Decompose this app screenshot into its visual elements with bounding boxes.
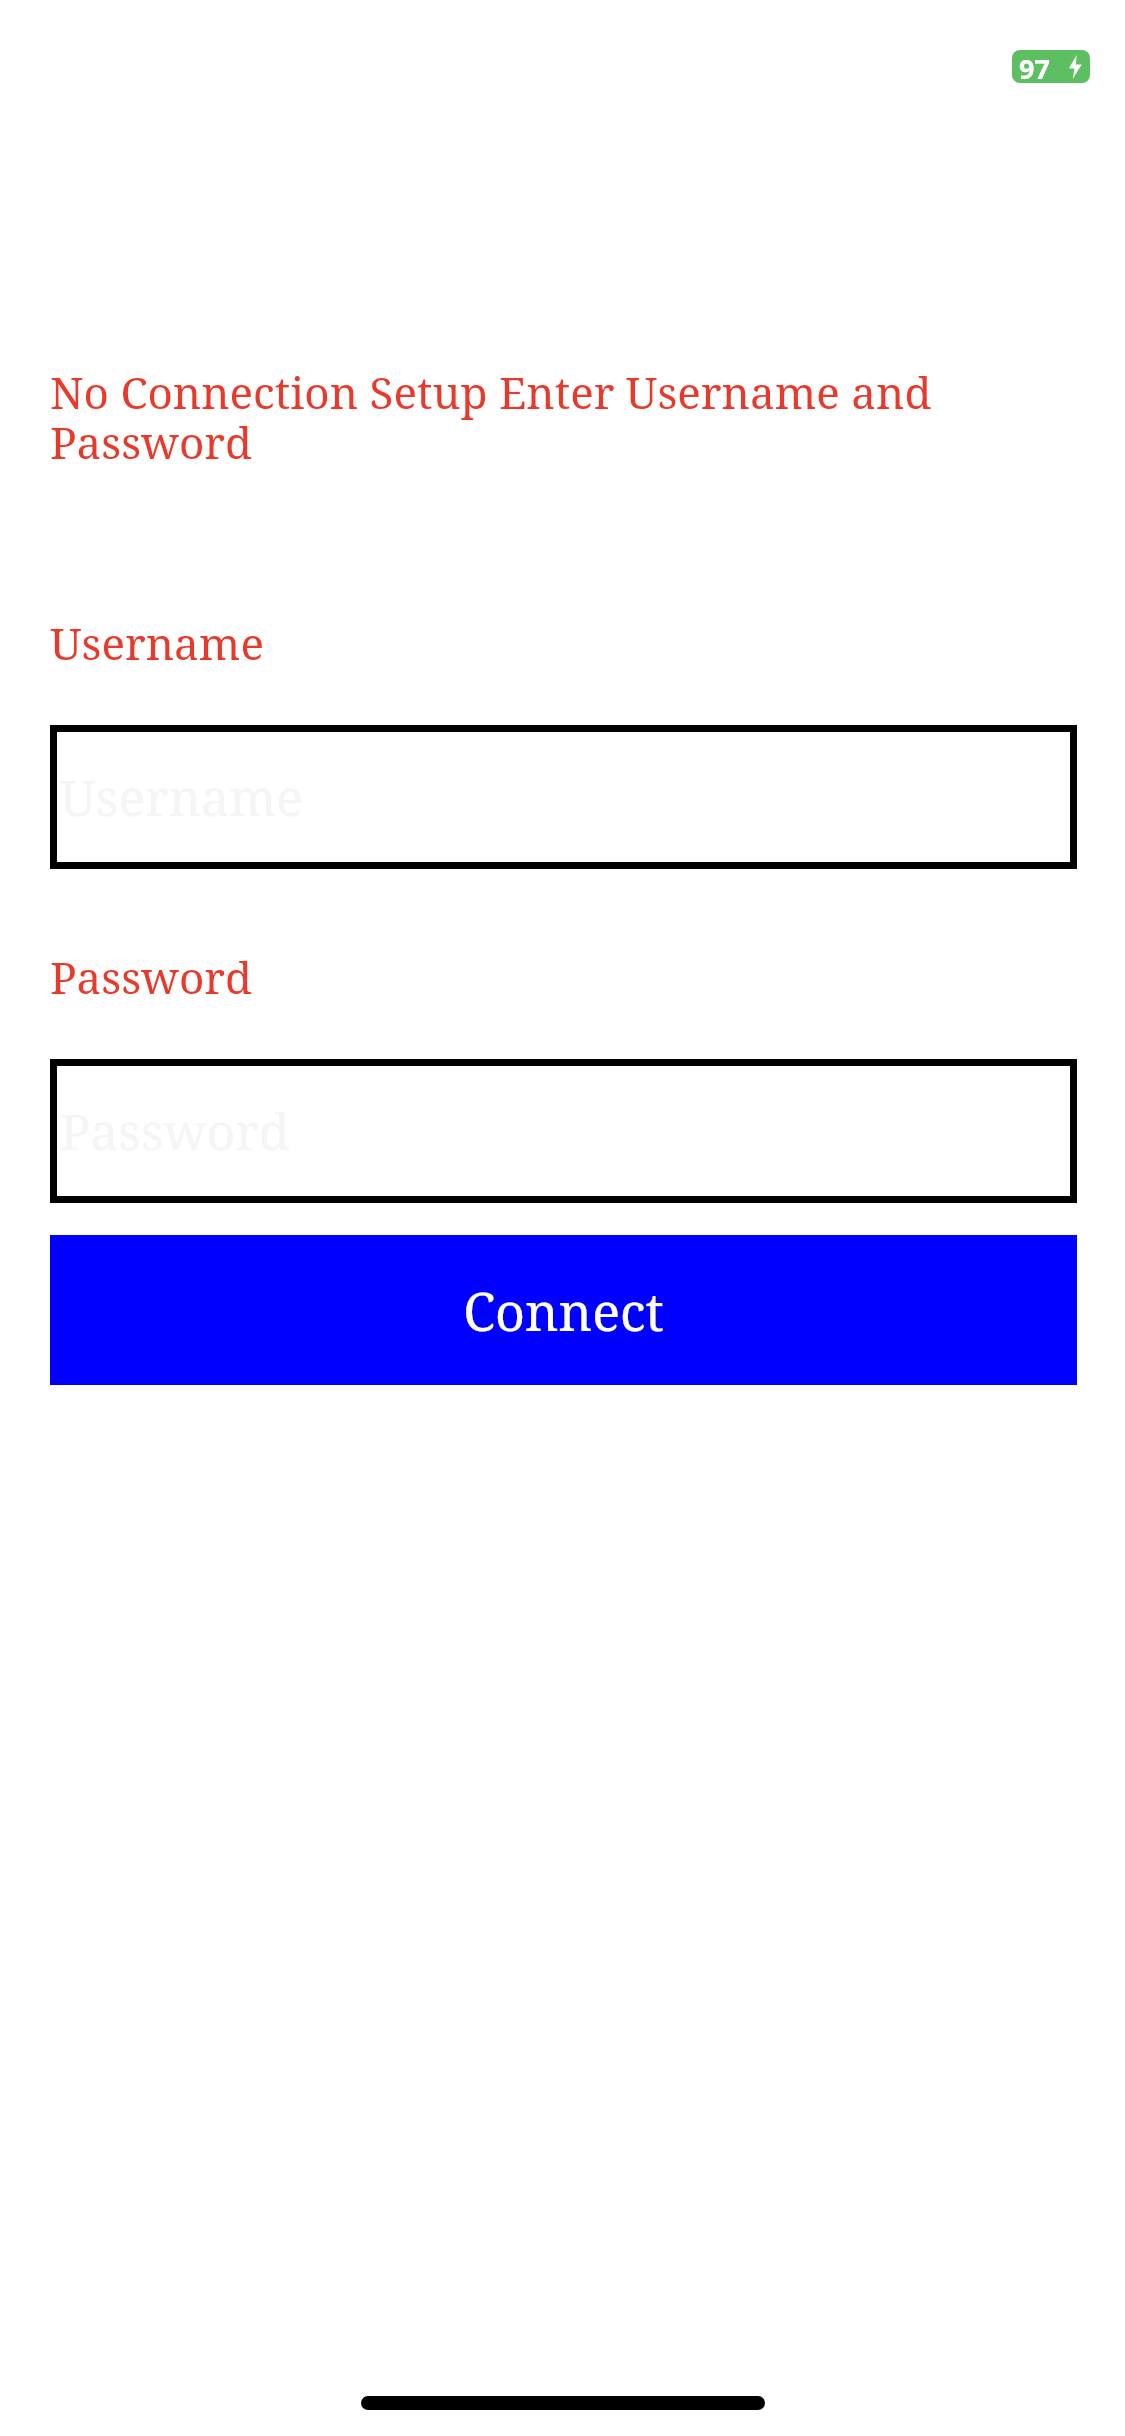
staticText: Username [50,613,264,673]
button[interactable]: Connect [50,1235,1077,1385]
button[interactable]: Password [50,1059,1077,1203]
button[interactable]: Username [50,725,1077,869]
staticText: 97 [1019,50,1050,83]
staticText: Username [60,763,304,831]
staticText: No Connection Setup Enter Username and P… [50,362,1077,472]
staticText: Password [60,1097,290,1165]
staticText: Connect [463,1275,664,1346]
staticText: Password [50,947,253,1007]
other: Battery 97 percent charging [1012,50,1090,83]
